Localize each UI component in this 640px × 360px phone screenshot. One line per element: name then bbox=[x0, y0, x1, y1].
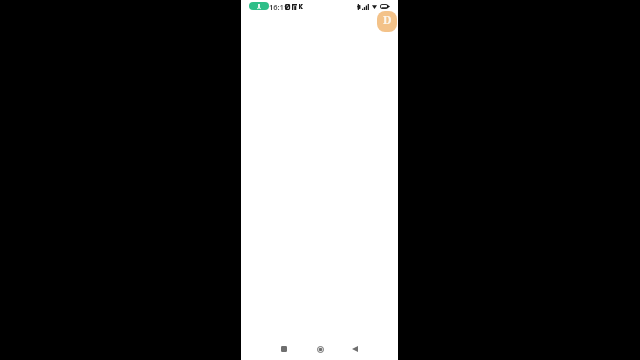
button[interactable]: Recent apps bbox=[275, 340, 293, 358]
button[interactable]: Floating app bubble bbox=[377, 11, 397, 32]
staticText: D bbox=[383, 12, 392, 27]
button[interactable]: Back bbox=[346, 340, 364, 358]
staticText: 16:11 bbox=[269, 2, 288, 12]
button[interactable]: Home bbox=[311, 340, 329, 358]
